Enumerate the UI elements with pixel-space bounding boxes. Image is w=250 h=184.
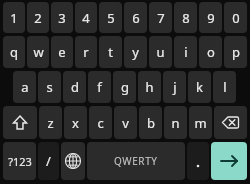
staticText: 4 <box>82 9 90 27</box>
button[interactable]: QWERTY <box>87 142 185 180</box>
staticText: 3 <box>58 9 66 27</box>
button[interactable]: 8 <box>174 2 197 33</box>
button[interactable]: q <box>3 36 25 68</box>
staticText: q <box>10 43 18 61</box>
button[interactable]: t <box>99 36 122 68</box>
button[interactable]: 2 <box>27 2 49 33</box>
staticText: j <box>173 78 177 96</box>
button[interactable]: z <box>39 106 62 139</box>
button[interactable]: f <box>88 71 111 103</box>
staticText: f <box>97 78 102 96</box>
button[interactable]: 9 <box>199 2 222 33</box>
button[interactable]: o <box>199 36 222 68</box>
staticText: h <box>145 78 154 96</box>
button[interactable]: k <box>188 71 211 103</box>
staticText: l <box>223 78 227 96</box>
button[interactable]: Period <box>187 142 209 180</box>
button[interactable]: c <box>89 106 112 139</box>
button[interactable]: ?123 <box>3 142 36 180</box>
staticText: v <box>122 114 129 132</box>
staticText: 0 <box>232 9 240 27</box>
button[interactable]: 7 <box>149 2 172 33</box>
staticText: g <box>121 78 129 96</box>
staticText: r <box>83 43 89 61</box>
button[interactable]: w <box>27 36 49 68</box>
button[interactable]: b <box>139 106 162 139</box>
staticText: QWERTY <box>114 154 158 168</box>
staticText: p <box>232 43 240 61</box>
button[interactable]: 6 <box>124 2 147 33</box>
button[interactable]: e <box>51 36 73 68</box>
staticText: w <box>33 43 44 61</box>
staticText: d <box>71 78 79 96</box>
button[interactable]: m <box>189 106 212 139</box>
staticText: e <box>58 43 66 61</box>
staticText: 6 <box>132 9 140 27</box>
button[interactable]: u <box>149 36 172 68</box>
staticText: x <box>72 114 79 132</box>
button[interactable]: 5 <box>99 2 122 33</box>
staticText: / <box>46 152 51 170</box>
staticText: ?123 <box>8 154 32 169</box>
button[interactable]: Change keyboard language <box>61 142 85 180</box>
button[interactable]: Shift <box>3 106 37 139</box>
button[interactable]: r <box>75 36 97 68</box>
staticText: m <box>194 114 207 132</box>
button[interactable]: 3 <box>51 2 73 33</box>
staticText: y <box>132 43 139 61</box>
staticText: 2 <box>34 9 42 27</box>
button[interactable]: p <box>224 36 247 68</box>
button[interactable]: d <box>63 71 86 103</box>
button[interactable]: a <box>13 71 36 103</box>
button[interactable]: 0 <box>224 2 247 33</box>
button[interactable]: Enter <box>211 142 247 180</box>
button[interactable]: i <box>174 36 197 68</box>
button[interactable]: y <box>124 36 147 68</box>
button[interactable]: v <box>114 106 137 139</box>
staticText: 7 <box>157 9 165 27</box>
staticText: 8 <box>182 9 190 27</box>
staticText: 9 <box>207 9 215 27</box>
button[interactable]: g <box>113 71 136 103</box>
button[interactable]: 4 <box>75 2 97 33</box>
button[interactable]: n <box>164 106 187 139</box>
staticText: k <box>196 78 203 96</box>
staticText: t <box>108 43 113 61</box>
button[interactable]: x <box>64 106 87 139</box>
staticText: i <box>184 43 188 61</box>
button[interactable]: h <box>138 71 161 103</box>
staticText: s <box>46 78 53 96</box>
staticText: 5 <box>107 9 115 27</box>
staticText: u <box>156 43 165 61</box>
staticText: c <box>97 114 104 132</box>
staticText: a <box>21 78 29 96</box>
staticText: o <box>207 43 215 61</box>
button[interactable]: Backspace <box>214 106 247 139</box>
button[interactable]: 1 <box>3 2 25 33</box>
staticText: z <box>47 114 54 132</box>
staticText: b <box>147 114 155 132</box>
staticText: n <box>171 114 180 132</box>
button[interactable]: s <box>38 71 61 103</box>
button[interactable]: / <box>38 142 59 180</box>
button[interactable]: l <box>213 71 236 103</box>
staticText: 1 <box>10 9 18 27</box>
button[interactable]: j <box>163 71 186 103</box>
